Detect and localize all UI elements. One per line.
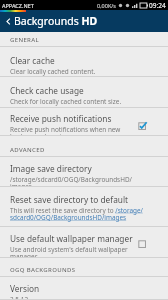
staticText: GENERAL xyxy=(10,36,40,44)
staticText: Backgrounds HD xyxy=(14,14,98,28)
staticText: Receive push notifications when new back… xyxy=(10,125,143,136)
button[interactable]: Receive push notifications xyxy=(0,108,168,136)
staticText: OGQ BACKGROUNDS xyxy=(10,266,76,274)
staticText: Use default wallpaper manager xyxy=(10,233,133,244)
staticText: Use android system's default wallpaper m… xyxy=(10,245,143,258)
button[interactable]: Clear cache xyxy=(0,47,168,77)
staticText: 0,00K/s xyxy=(97,2,116,9)
button[interactable]: Image save directory xyxy=(0,157,168,187)
staticText: This will reset the save directory to /s… xyxy=(10,206,143,222)
staticText: Check cache usage xyxy=(10,85,84,96)
button[interactable]: Navigate up xyxy=(2,15,14,27)
staticText: 3.5.13 xyxy=(10,295,29,300)
staticText: ADVANCED xyxy=(10,146,45,154)
button[interactable]: Use default wallpaper manager xyxy=(0,227,168,258)
staticText: Version xyxy=(10,283,40,294)
staticText: Image save directory xyxy=(10,163,92,174)
staticText: Clear cache xyxy=(10,55,55,66)
staticText: Receive push notifications xyxy=(10,113,112,124)
button[interactable]: Reset save directory to default xyxy=(0,187,168,227)
staticText: Check for locally cached content size. xyxy=(10,97,122,106)
staticText: Reset save directory to default xyxy=(10,194,129,205)
staticText: Clear locally cached content. xyxy=(10,67,96,76)
staticText: APPACZ.NET xyxy=(2,2,34,9)
staticText: 09:24 xyxy=(149,1,166,10)
button[interactable]: Check cache usage xyxy=(0,77,168,108)
button[interactable]: Version xyxy=(0,277,168,300)
staticText: /storage/sdcard0/OGQ/BackgroundsHD/image… xyxy=(10,175,143,187)
